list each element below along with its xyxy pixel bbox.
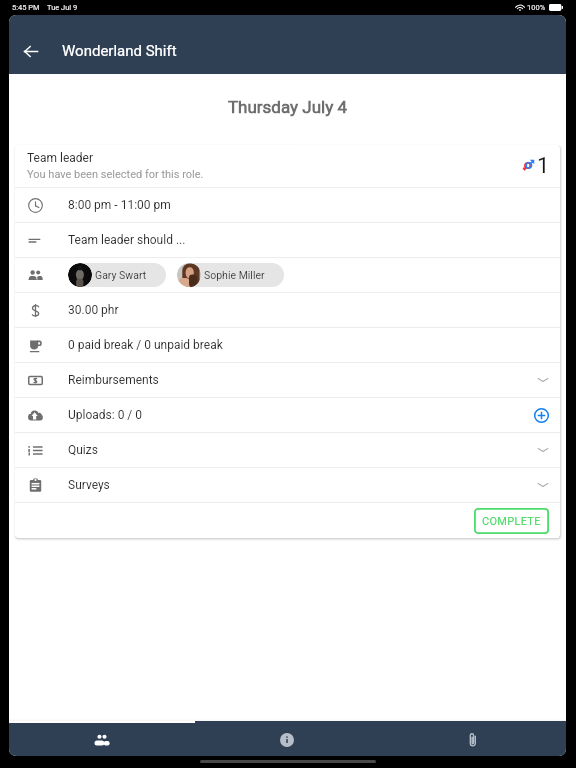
button[interactable]: Sophie Miller [177, 263, 284, 287]
button[interactable]: COMPLETE [474, 508, 549, 534]
button[interactable]: Uploads: 0 / 0 [15, 398, 560, 432]
staticText: 8:00 pm - 11:00 pm [68, 198, 171, 212]
staticText: Surveys [68, 478, 110, 492]
staticText: 0 paid break / 0 unpaid break [68, 338, 223, 352]
button[interactable]: Surveys [15, 468, 560, 502]
staticText: Team leader should ... [68, 233, 186, 247]
staticText: Reimbursements [68, 373, 159, 387]
button[interactable]: Gary Swart [68, 263, 166, 287]
staticText: Gary Swart [95, 269, 147, 281]
button[interactable]: Info [194, 723, 380, 756]
staticText: Uploads: 0 / 0 [68, 408, 143, 422]
staticText: You have been selected for this role. [27, 168, 204, 181]
button[interactable]: 8:00 pm - 11:00 pm [15, 188, 560, 222]
staticText: 5:45 PM [12, 3, 40, 12]
staticText: COMPLETE [482, 515, 541, 528]
staticText: Wonderland Shift [62, 42, 177, 60]
staticText: Team leader [27, 151, 93, 165]
button[interactable]: 0 paid break / 0 unpaid break [15, 328, 560, 362]
staticText: Quizs [68, 443, 98, 457]
staticText: 1 [537, 153, 550, 179]
staticText: Sophie Miller [204, 269, 265, 281]
staticText: Thursday July 4 [9, 97, 566, 117]
staticText: 100% [527, 3, 546, 12]
button[interactable]: Back [12, 31, 50, 71]
button[interactable]: Team leader should ... [15, 223, 560, 257]
staticText: Tue Jul 9 [47, 3, 78, 12]
button[interactable]: People [9, 723, 194, 756]
button[interactable]: Attachments [380, 723, 566, 756]
button[interactable]: Quizs [15, 433, 560, 467]
button[interactable]: Reimbursements [15, 363, 560, 397]
staticText: 30.00 phr [68, 303, 119, 317]
button[interactable]: 30.00 phr [15, 293, 560, 327]
button[interactable]: Team leader [15, 145, 560, 187]
